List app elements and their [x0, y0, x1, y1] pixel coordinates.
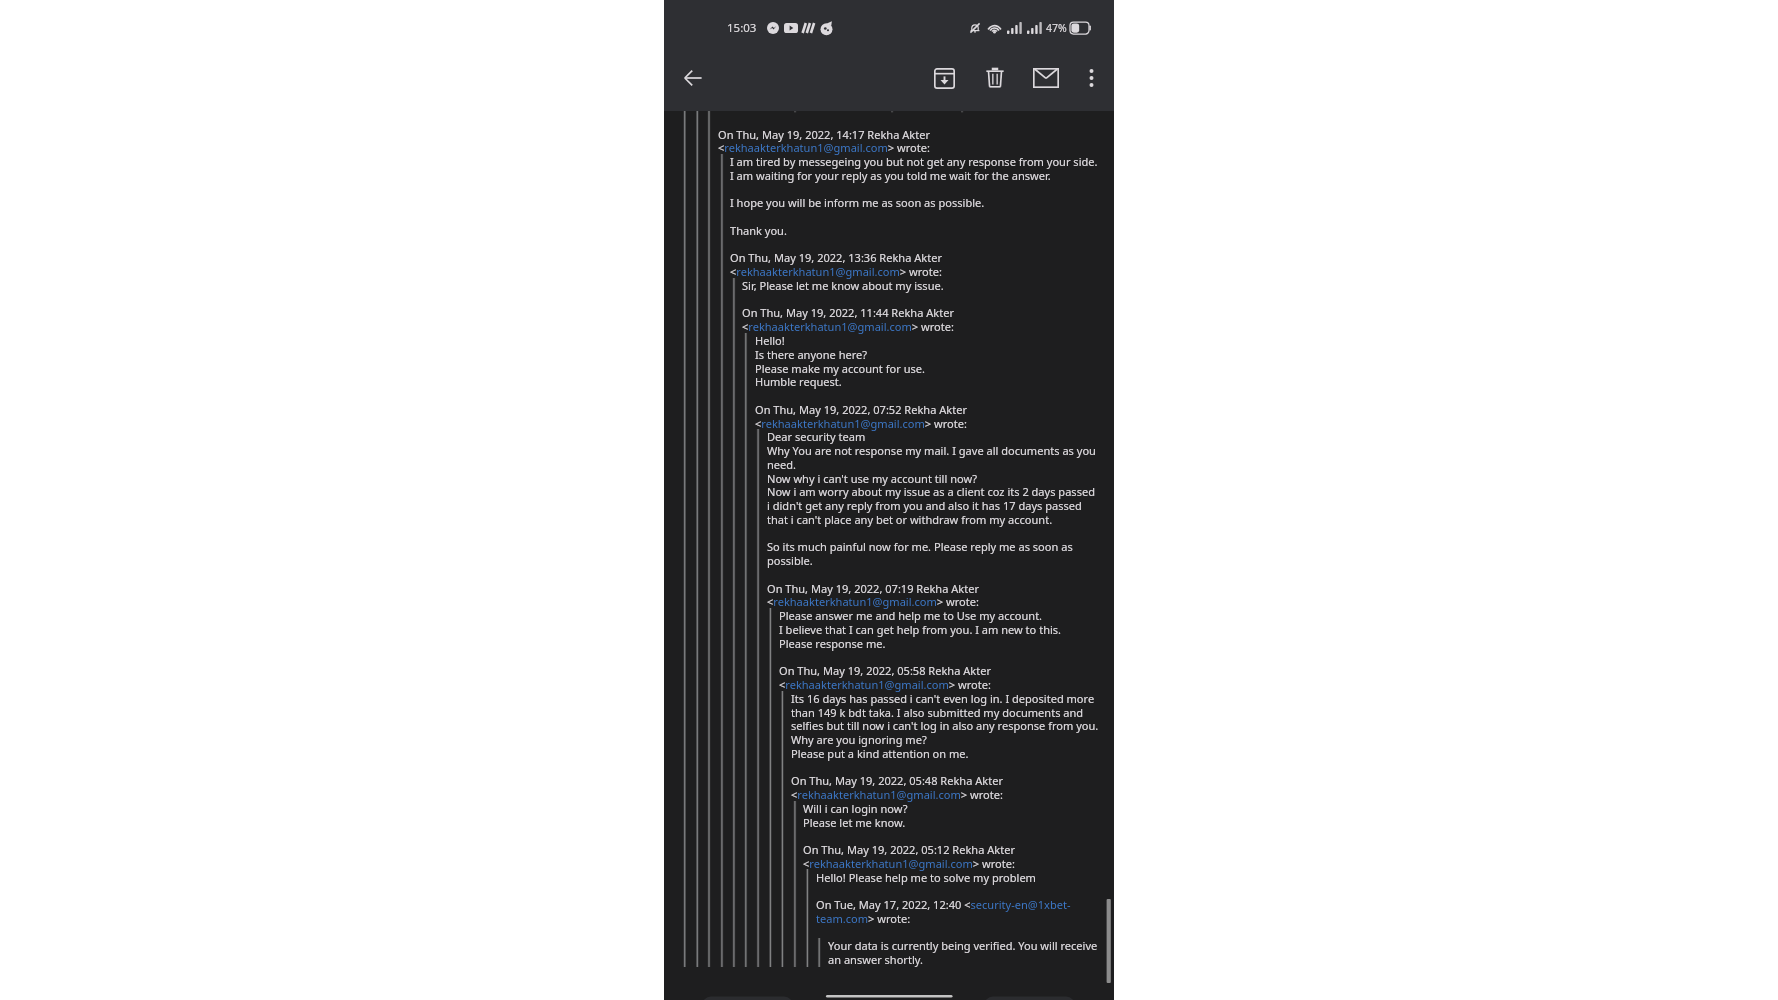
- staticText: On Tue, May 17, 2022, 12:40 <security-en…: [816, 897, 1071, 912]
- staticText: I am waiting for your reply as you told …: [730, 168, 1051, 183]
- staticText: Now why i can't use my account till now?: [767, 471, 978, 486]
- staticText: On Thu, May 19, 2022, 05:58 Rekha Akter: [779, 663, 992, 678]
- staticText: an answer shortly.: [828, 952, 923, 967]
- staticText: Please put a kind attention on me.: [791, 746, 969, 761]
- staticText: On Thu, May 19, 2022, 11:44 Rekha Akter: [742, 305, 955, 320]
- staticText: Now i am worry about my issue as a clien…: [767, 484, 1095, 499]
- staticText: On Thu, May 19, 2022, 05:48 Rekha Akter: [791, 773, 1004, 788]
- staticText: Is there anyone here?: [755, 347, 868, 362]
- staticText: Hello!: [755, 333, 785, 348]
- button[interactable]: Archive: [930, 56, 959, 100]
- staticText: <rekhaakterkhatun1@gmail.com> wrote:: [755, 416, 967, 431]
- staticText: <rekhaakterkhatun1@gmail.com> wrote:: [791, 787, 1003, 802]
- staticText: Humble request.: [755, 374, 842, 389]
- staticText: Please answer me and help me to Use my a…: [779, 608, 1043, 623]
- staticText: <rekhaakterkhatun1@gmail.com> wrote:: [767, 594, 979, 609]
- staticText: I am tired by messegeing you but not get…: [730, 154, 1098, 169]
- staticText: <rekhaakterkhatun1@gmail.com> wrote:: [803, 856, 1015, 871]
- staticText: <rekhaakterkhatun1@gmail.com> wrote:: [742, 319, 954, 334]
- button[interactable]: Delete: [982, 56, 1008, 100]
- staticText: Sir, Please let me know about my issue.: [742, 278, 944, 293]
- staticText: team.com> wrote:: [816, 911, 911, 926]
- staticText: On Thu, May 19, 2022, 07:52 Rekha Akter: [755, 402, 968, 417]
- staticText: <rekhaakterkhatun1@gmail.com> wrote:: [718, 140, 930, 155]
- staticText: On Thu, May 19, 2022, 14:17 Rekha Akter: [718, 127, 931, 142]
- staticText: Please make my account for use.: [755, 361, 925, 376]
- staticText: Its 16 days has passed i can't even log …: [791, 691, 1095, 706]
- staticText: On Thu, May 19, 2022, 07:19 Rekha Akter: [767, 581, 980, 596]
- staticText: On Thu, May 19, 2022, 13:36 Rekha Akter: [730, 250, 943, 265]
- staticText: Why are you ignoring me?: [791, 732, 927, 747]
- staticText: Thank you.: [730, 223, 787, 238]
- button[interactable]: Back: [674, 59, 712, 97]
- staticText: than 149 k bdt taka. I also submitted my…: [791, 705, 1084, 720]
- button[interactable]: More options: [1085, 56, 1098, 100]
- staticText: Your data is currently being verified. Y…: [828, 938, 1098, 953]
- staticText: selfies but till now i can't log in also…: [791, 718, 1099, 733]
- staticText: Will i can login now?: [803, 801, 908, 816]
- staticText: 15:03: [727, 20, 757, 36]
- button[interactable]: Mark as unread: [1029, 56, 1063, 100]
- staticText: that i can't place any bet or withdraw f…: [767, 512, 1053, 527]
- staticText: Please let me know.: [803, 815, 906, 830]
- staticText: i didn't get any reply from you and also…: [767, 498, 1082, 513]
- staticText: need.: [767, 457, 797, 472]
- staticText: possible.: [767, 553, 813, 568]
- staticText: <rekhaakterkhatun1@gmail.com> wrote:: [730, 264, 942, 279]
- staticText: On Thu, May 19, 2022, 05:12 Rekha Akter: [803, 842, 1016, 857]
- staticText: I believe that I can get help from you. …: [779, 622, 1062, 637]
- staticText: I hope you will be inform me as soon as …: [730, 195, 985, 210]
- staticText: Hello! Please help me to solve my proble…: [816, 870, 1036, 885]
- staticText: Please response me.: [779, 636, 886, 651]
- staticText: 47%: [1046, 21, 1067, 35]
- staticText: Why You are not response my mail. I gave…: [767, 443, 1096, 458]
- staticText: Dear security team: [767, 429, 866, 444]
- staticText: <rekhaakterkhatun1@gmail.com> wrote:: [779, 677, 991, 692]
- staticText: So its much painful now for me. Please r…: [767, 539, 1073, 554]
